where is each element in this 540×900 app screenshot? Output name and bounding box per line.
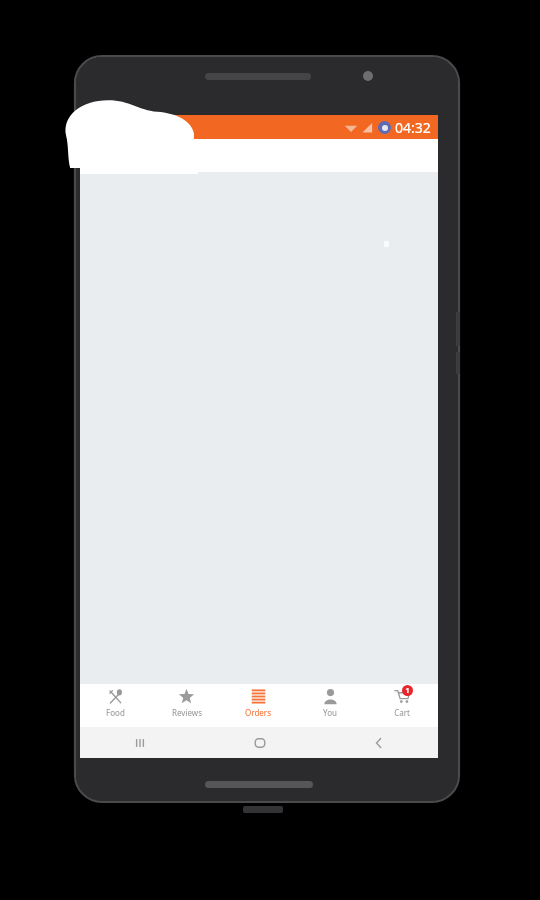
button[interactable]: Food xyxy=(80,684,151,727)
button[interactable]: You xyxy=(294,684,366,727)
button[interactable]: Recent apps xyxy=(80,727,200,758)
button[interactable]: Reviews xyxy=(151,684,222,727)
staticText: 1 xyxy=(405,686,410,696)
staticText: Cart xyxy=(394,707,410,718)
staticText: 04:32 xyxy=(395,118,431,137)
staticText: Orders xyxy=(245,707,271,718)
staticText: Food xyxy=(106,707,125,718)
staticText: You xyxy=(323,707,337,718)
button[interactable]: Home xyxy=(200,727,319,758)
button[interactable]: 1 xyxy=(366,684,438,727)
staticText: Reviews xyxy=(172,707,202,718)
button[interactable]: Back xyxy=(319,727,438,758)
button[interactable]: Orders xyxy=(222,684,294,727)
